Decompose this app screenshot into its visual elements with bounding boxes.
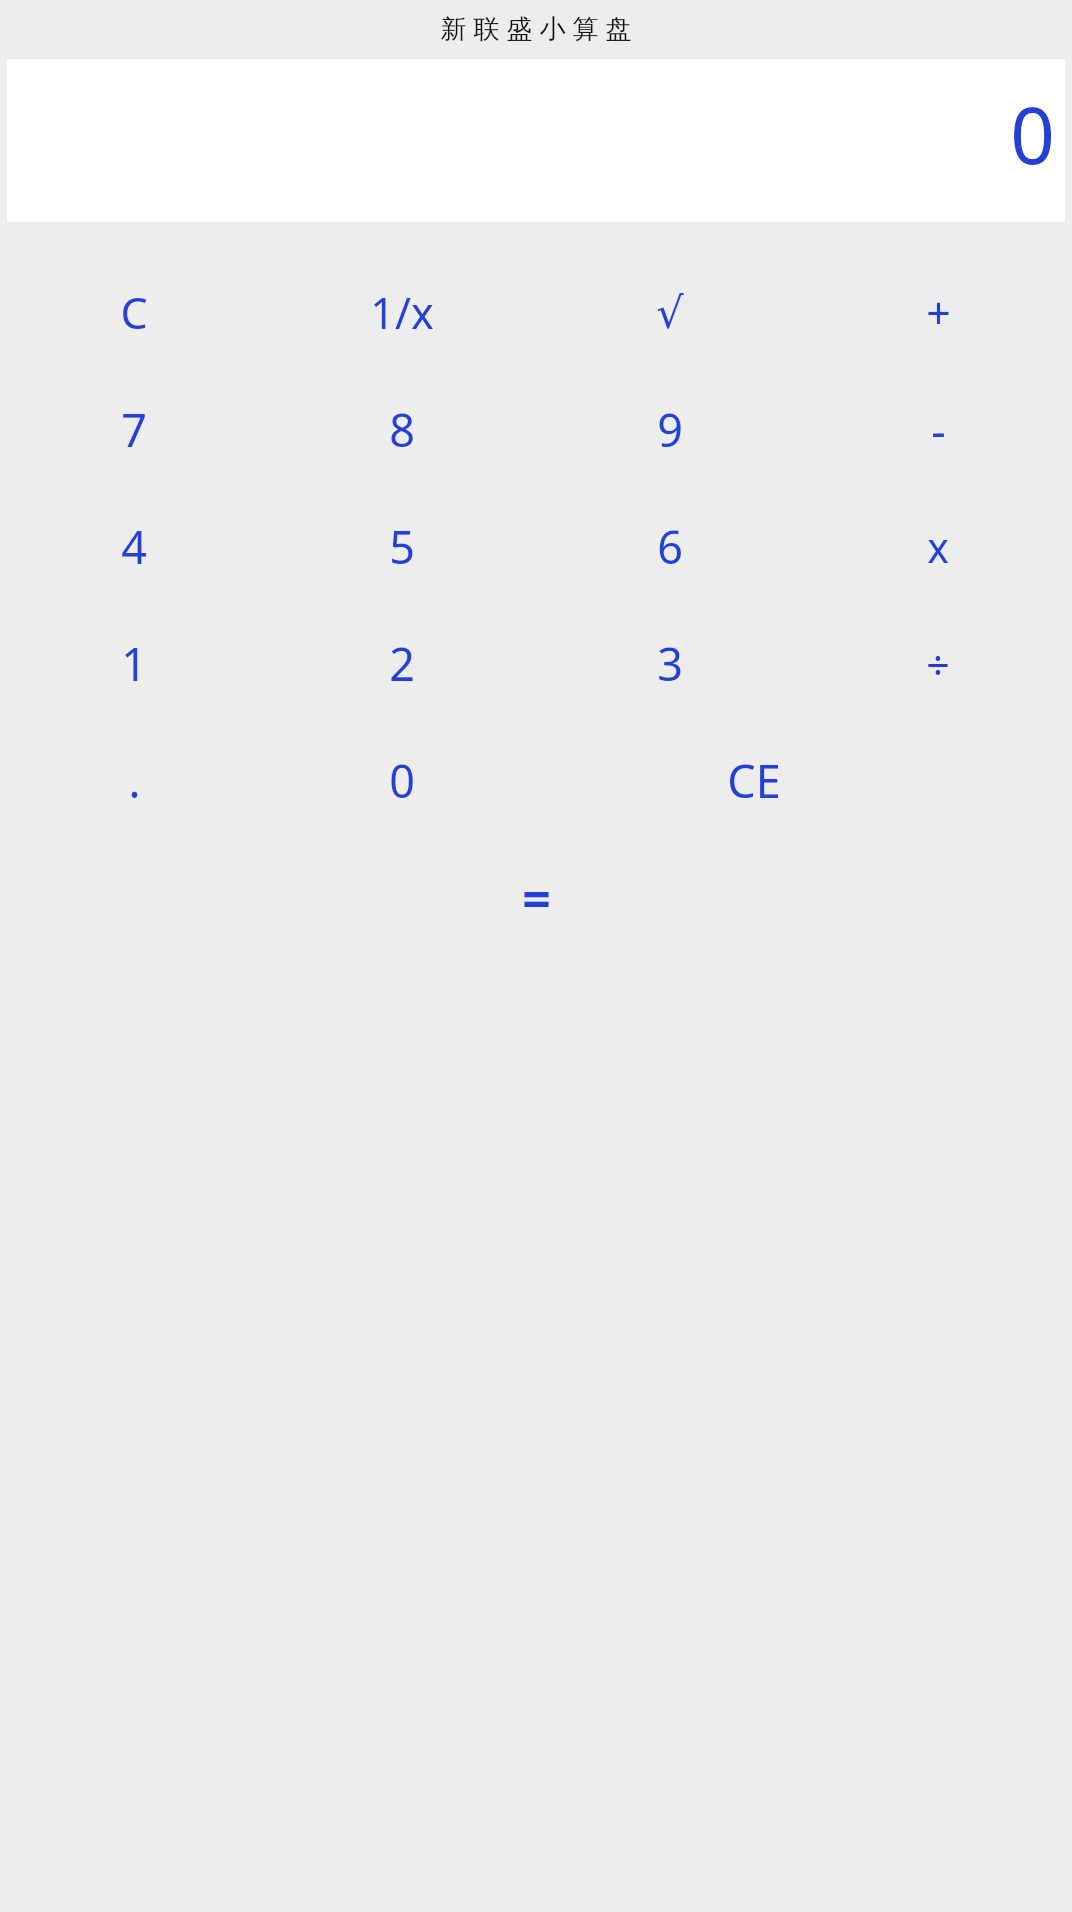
button[interactable]: C [0,254,268,371]
staticText: = [522,864,551,932]
button[interactable]: 5 [268,488,536,605]
button[interactable]: ÷ [804,605,1072,722]
button[interactable]: 1/x [268,254,536,371]
staticText: 0 [389,750,415,811]
button[interactable]: 4 [0,488,268,605]
staticText: 新联盛小算盘 [437,13,635,46]
staticText: 7 [121,399,147,460]
staticText: CE [727,750,781,811]
staticText: 0 [1010,81,1055,187]
button[interactable]: 0 [268,722,536,839]
button[interactable]: 6 [536,488,804,605]
button[interactable]: 8 [268,371,536,488]
button[interactable]: CE [536,722,1072,839]
button[interactable]: Equals [441,839,631,956]
staticText: - [931,399,946,460]
staticText: 9 [657,399,683,460]
staticText: ÷ [926,636,950,692]
staticText: C [120,283,148,342]
staticText: 4 [121,516,147,577]
button[interactable]: 7 [0,371,268,488]
button[interactable]: 2 [268,605,536,722]
staticText: . [128,750,141,811]
staticText: √ [656,288,684,338]
staticText: + [926,283,951,342]
button[interactable]: 1 [0,605,268,722]
staticText: 8 [389,399,415,460]
staticText: 6 [657,516,683,577]
staticText: 2 [389,633,415,694]
staticText: 5 [389,516,415,577]
button[interactable]: x [804,488,1072,605]
button[interactable]: 9 [536,371,804,488]
button[interactable]: + [804,254,1072,371]
button[interactable]: - [804,371,1072,488]
staticText: 3 [657,633,683,694]
staticText: 1/x [370,283,434,342]
button[interactable]: . [0,722,268,839]
staticText: 1 [121,633,147,694]
button[interactable]: 3 [536,605,804,722]
staticText: x [927,519,949,575]
button[interactable]: √ [536,254,804,371]
